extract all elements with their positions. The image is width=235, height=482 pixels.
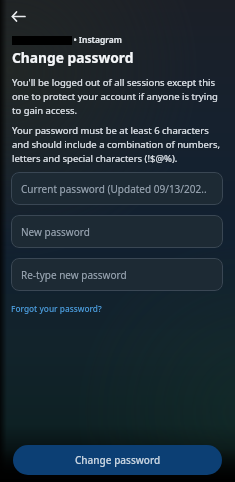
button[interactable]: Current password (Updated 09/13/202.. xyxy=(11,172,223,205)
staticText: New password xyxy=(21,225,90,239)
button[interactable]: New password xyxy=(11,215,223,248)
staticText: Change password xyxy=(12,48,134,67)
staticText: You'll be logged out of all sessions exc… xyxy=(12,76,230,116)
staticText: Your password must be at least 6 charact… xyxy=(12,124,230,164)
button[interactable]: Re-type new password xyxy=(11,258,223,291)
staticText: Re-type new password xyxy=(21,268,127,282)
button[interactable]: Forgot your password? xyxy=(11,303,102,314)
staticText: Change password xyxy=(75,453,161,467)
button[interactable] xyxy=(6,7,30,26)
staticText: Current password (Updated 09/13/202.. xyxy=(21,182,207,196)
staticText: • Instagram xyxy=(72,34,122,46)
button[interactable]: Change password xyxy=(13,445,222,475)
